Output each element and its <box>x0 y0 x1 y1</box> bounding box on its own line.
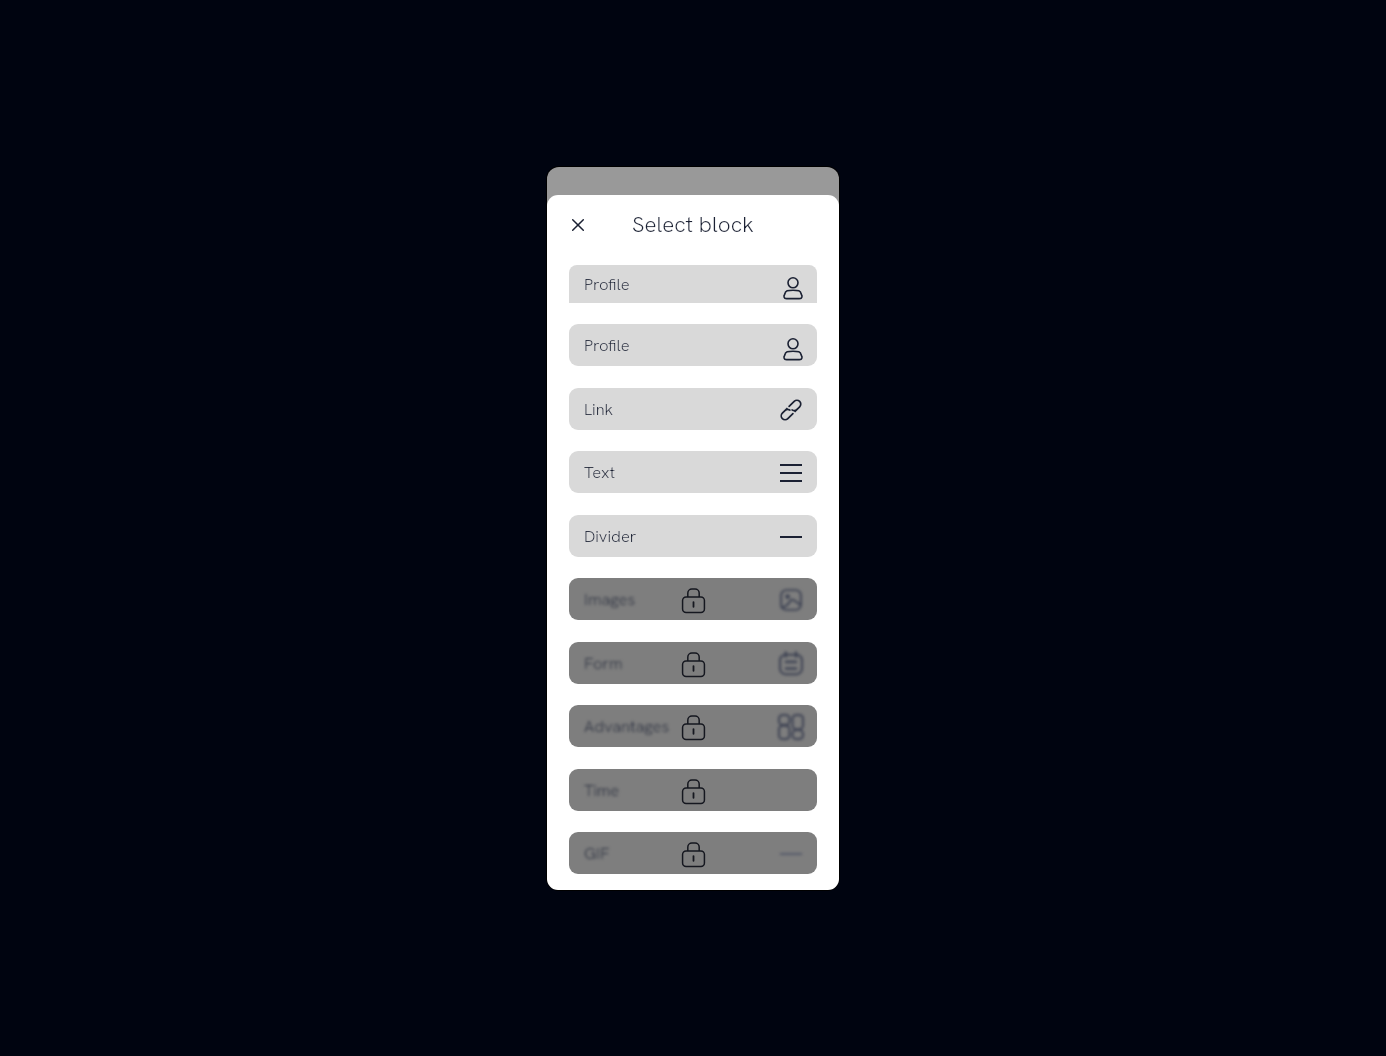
button[interactable]: Time <box>569 769 817 811</box>
button[interactable]: Divider <box>569 515 817 557</box>
button[interactable]: GIF <box>569 832 817 874</box>
button[interactable]: Advantages <box>569 705 817 747</box>
staticText: Divider <box>584 525 637 547</box>
button[interactable]: Form <box>569 642 817 684</box>
staticText: GIF <box>584 842 610 864</box>
staticText: Profile <box>584 334 630 356</box>
staticText: Images <box>584 588 636 610</box>
staticText: Select block <box>632 210 754 239</box>
staticText: Form <box>584 652 623 674</box>
button[interactable]: Close <box>569 216 587 234</box>
button[interactable]: Profile <box>569 324 817 366</box>
staticText: Text <box>584 461 615 483</box>
staticText: Time <box>584 779 620 801</box>
button[interactable]: Text <box>569 451 817 493</box>
staticText: Link <box>584 398 614 420</box>
staticText: Advantages <box>584 715 670 737</box>
button[interactable]: Images <box>569 578 817 620</box>
button[interactable]: Link <box>569 388 817 430</box>
staticText: Profile <box>584 273 630 295</box>
button[interactable]: Profile <box>569 265 817 303</box>
